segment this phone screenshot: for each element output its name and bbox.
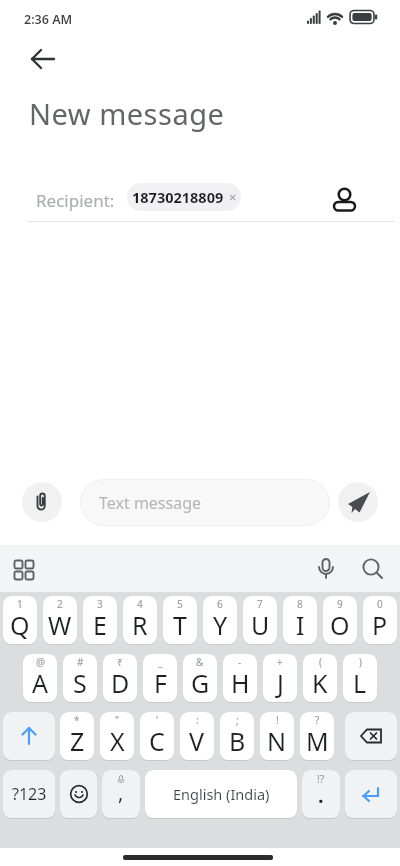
staticText: * xyxy=(74,713,80,727)
button[interactable] xyxy=(13,558,37,582)
staticText: A xyxy=(32,666,48,700)
button[interactable]: @ xyxy=(23,654,57,703)
button[interactable] xyxy=(22,482,62,522)
button[interactable]: 4 xyxy=(123,596,157,645)
button[interactable]: 8 xyxy=(283,596,317,645)
staticText: E xyxy=(93,608,107,642)
staticText: L xyxy=(353,666,367,700)
staticText: + xyxy=(277,655,283,669)
staticText: W xyxy=(48,608,72,642)
staticText: # xyxy=(77,655,84,669)
button[interactable]: 3 xyxy=(83,596,117,645)
button[interactable] xyxy=(3,712,55,761)
staticText: Q xyxy=(10,608,30,642)
button[interactable] xyxy=(361,558,385,582)
button[interactable] xyxy=(60,770,97,819)
staticText: ? xyxy=(315,713,320,727)
button[interactable]: ! xyxy=(260,712,294,761)
staticText: B xyxy=(229,724,246,758)
staticText: T xyxy=(173,608,187,642)
staticText: English (India) xyxy=(173,784,270,804)
staticText: ) xyxy=(359,655,362,669)
staticText: _ xyxy=(158,655,163,669)
button[interactable]: ) xyxy=(343,654,377,703)
staticText: 1 xyxy=(17,597,23,611)
button[interactable]: 2 xyxy=(43,596,77,645)
staticText: 6 xyxy=(217,597,223,611)
button[interactable]: : xyxy=(180,712,214,761)
staticText: U xyxy=(251,608,270,642)
staticText: J xyxy=(277,666,284,700)
staticText: New message xyxy=(29,94,225,133)
button[interactable]: * xyxy=(60,712,94,761)
staticText: ! xyxy=(276,713,279,727)
staticText: ?123 xyxy=(12,783,47,805)
button[interactable] xyxy=(332,184,358,214)
button[interactable]: ( xyxy=(303,654,337,703)
staticText: K xyxy=(312,666,328,700)
staticText: 0 xyxy=(377,597,383,611)
staticText: F xyxy=(154,666,167,700)
staticText: , xyxy=(118,779,124,806)
button[interactable]: 18730218809 xyxy=(127,183,241,211)
button[interactable]: _ xyxy=(143,654,177,703)
button[interactable]: ?123 xyxy=(3,770,55,819)
button[interactable]: 9 xyxy=(323,596,357,645)
staticText: H xyxy=(231,666,250,700)
button[interactable]: - xyxy=(223,654,257,703)
staticText: " xyxy=(115,713,120,727)
button[interactable]: ₹ xyxy=(103,654,137,703)
staticText: ( xyxy=(319,655,322,669)
staticText: Z xyxy=(70,724,85,758)
button[interactable]: 0 xyxy=(363,596,397,645)
button[interactable]: English (India) xyxy=(145,770,297,819)
button[interactable]: ? xyxy=(300,712,334,761)
button[interactable]: ; xyxy=(220,712,254,761)
button[interactable] xyxy=(338,482,378,522)
staticText: Y xyxy=(213,608,228,642)
staticText: Text message xyxy=(99,492,202,514)
staticText: G xyxy=(191,666,210,700)
staticText: 7 xyxy=(257,597,263,611)
button[interactable] xyxy=(345,770,397,819)
staticText: X xyxy=(110,724,125,758)
staticText: R xyxy=(132,608,148,642)
button[interactable]: " xyxy=(100,712,134,761)
button[interactable]: + xyxy=(263,654,297,703)
staticText: 8 xyxy=(297,597,303,611)
staticText: 4 xyxy=(137,597,143,611)
button[interactable]: Text message xyxy=(81,480,329,525)
button[interactable]: 1 xyxy=(3,596,37,645)
staticText: & xyxy=(196,655,204,669)
staticText: × xyxy=(229,188,237,206)
button[interactable]: # xyxy=(63,654,97,703)
staticText: . xyxy=(318,782,324,809)
button[interactable] xyxy=(345,712,397,761)
staticText: 18730218809 xyxy=(132,187,224,207)
staticText: ₹ xyxy=(117,655,123,669)
button[interactable]: ' xyxy=(140,712,174,761)
staticText: @ xyxy=(36,655,45,669)
button[interactable] xyxy=(28,45,58,73)
staticText: : xyxy=(196,713,199,727)
staticText: ; xyxy=(236,713,239,727)
button[interactable]: & xyxy=(183,654,217,703)
button[interactable]: , xyxy=(102,770,140,819)
button[interactable]: 6 xyxy=(203,596,237,645)
button[interactable]: 5 xyxy=(163,596,197,645)
staticText: 5 xyxy=(177,597,183,611)
button[interactable]: 7 xyxy=(243,596,277,645)
button[interactable]: !? xyxy=(302,770,340,819)
staticText: P xyxy=(372,608,388,642)
staticText: ' xyxy=(156,713,159,727)
staticText: !? xyxy=(317,772,325,786)
staticText: 9 xyxy=(337,597,343,611)
staticText: 2 xyxy=(57,597,63,611)
staticText: N xyxy=(267,724,287,758)
staticText: D xyxy=(111,666,130,700)
staticText: 2:36 AM xyxy=(24,11,73,28)
staticText: Recipient: xyxy=(36,189,115,212)
staticText: O xyxy=(330,608,350,642)
staticText: - xyxy=(238,655,242,669)
button[interactable] xyxy=(314,557,338,581)
